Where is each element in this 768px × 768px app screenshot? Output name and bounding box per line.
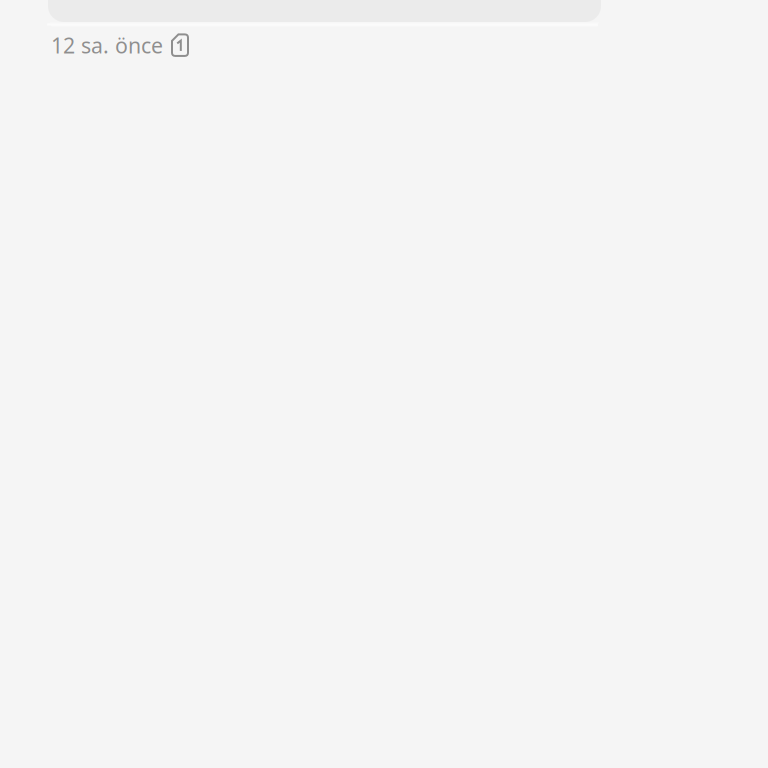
button[interactable]: 12 sa. önce, SIM 1 bbox=[48, 27, 189, 59]
staticText: 12 sa. önce bbox=[51, 31, 163, 59]
